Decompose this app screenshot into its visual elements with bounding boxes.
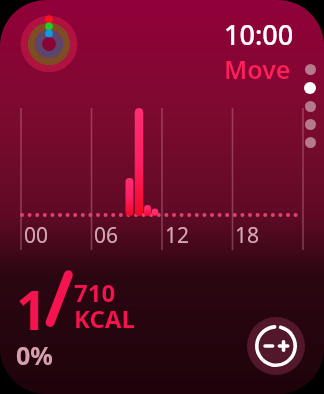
staticText: KCAL (74, 302, 135, 335)
staticText: 710 (74, 276, 116, 309)
button[interactable]: Adjust goal (247, 317, 305, 375)
button[interactable]: Activity rings (18, 13, 80, 75)
staticText: 12 (165, 221, 190, 250)
staticText: 00 (24, 221, 49, 250)
staticText: 1 (16, 272, 47, 346)
staticText: 18 (235, 221, 260, 250)
staticText: 0% (16, 338, 53, 372)
staticText: 10:00 (224, 16, 294, 53)
staticText: 06 (94, 221, 119, 250)
staticText: Move (224, 52, 291, 86)
